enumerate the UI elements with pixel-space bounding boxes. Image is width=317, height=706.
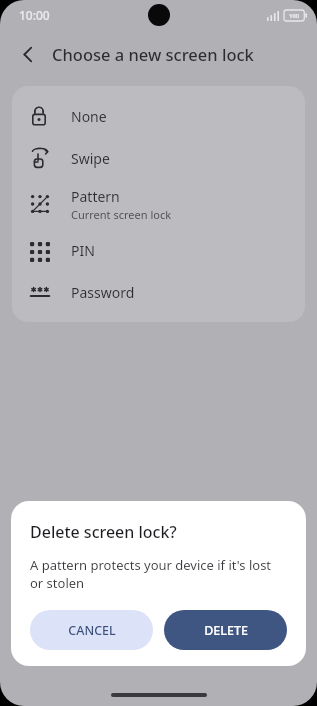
button[interactable]: Password [12, 271, 305, 313]
staticText: Pattern [71, 187, 120, 206]
button[interactable]: None [12, 95, 305, 137]
button[interactable]: Swipe [12, 137, 305, 179]
button[interactable]: Pattern [12, 179, 305, 229]
staticText: Delete screen lock? [30, 521, 177, 543]
staticText: PIN [71, 241, 95, 260]
staticText: A pattern protects your device if it's l… [30, 556, 287, 592]
staticText: None [71, 107, 107, 126]
button[interactable]: PIN [12, 229, 305, 271]
button[interactable]: DELETE [164, 610, 287, 650]
button[interactable]: CANCEL [30, 610, 153, 650]
staticText: Swipe [71, 149, 110, 168]
staticText: 10:00 [19, 7, 50, 23]
staticText: DELETE [204, 622, 248, 639]
staticText: Current screen lock [71, 207, 172, 222]
staticText: CANCEL [68, 622, 116, 639]
staticText: Choose a new screen lock [52, 43, 254, 65]
button[interactable]: Back [8, 34, 48, 74]
staticText: 100 [289, 12, 300, 20]
staticText: Password [71, 283, 135, 302]
